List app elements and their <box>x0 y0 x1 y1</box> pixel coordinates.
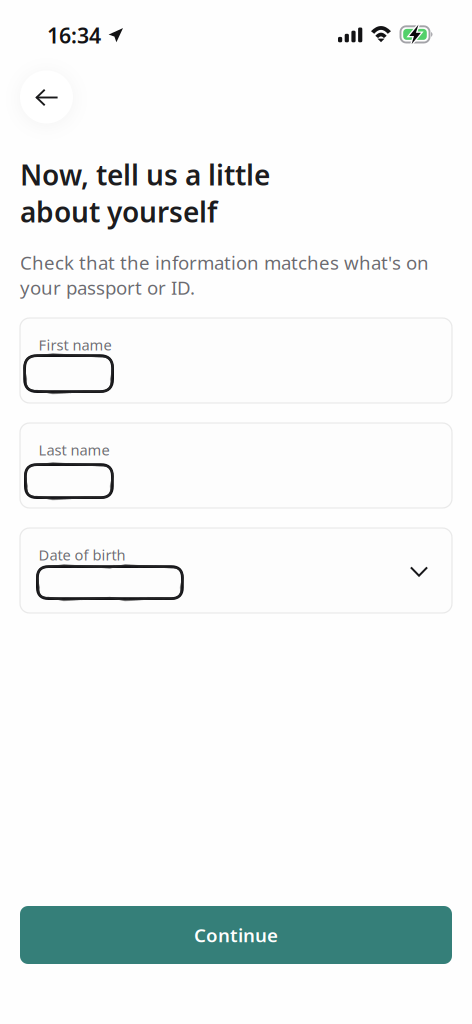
staticText: Last name <box>39 440 110 459</box>
staticText: 16:34 <box>47 21 101 49</box>
button[interactable]: Last name <box>20 423 452 508</box>
button[interactable]: Date of birth <box>20 528 452 613</box>
staticText: Continue <box>194 923 278 947</box>
button[interactable]: Back <box>20 70 73 123</box>
staticText: about yourself <box>20 193 217 230</box>
button[interactable]: First name <box>20 318 452 403</box>
staticText: Now, tell us a little <box>20 156 270 193</box>
button[interactable]: Continue <box>20 906 452 964</box>
staticText: your passport or ID. <box>20 275 195 300</box>
staticText: First name <box>39 335 112 354</box>
staticText: Date of birth <box>39 545 126 564</box>
staticText: Check that the information matches what'… <box>20 250 429 275</box>
